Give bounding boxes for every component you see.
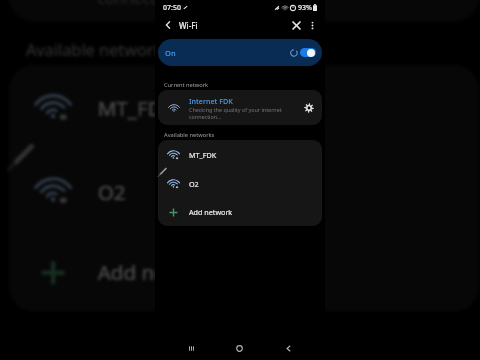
button[interactable]: MT_FDK [9,65,479,148]
button[interactable]: MT_FDK [158,140,322,169]
button[interactable]: On [158,39,322,66]
staticText: Checking the quality of your internet co… [189,106,293,120]
button[interactable]: Home [215,337,264,360]
button[interactable]: Internet FDK [9,0,479,22]
button[interactable]: Network settings [295,90,322,125]
button[interactable]: Back [264,337,313,360]
staticText: Internet FDK [189,96,233,106]
staticText: On [165,48,176,58]
button[interactable]: More options [305,18,320,33]
staticText: MT_FDK [98,93,178,122]
button[interactable]: Add network [158,198,322,226]
staticText: 93% [298,3,312,13]
button[interactable]: Scan QR code [288,17,305,34]
button[interactable]: Navigate up [160,17,176,33]
button[interactable]: Internet FDK [158,90,322,125]
staticText: Add network [98,257,224,286]
button[interactable]: Recent apps [167,337,215,360]
staticText: Add network [189,207,233,217]
staticText: Checking the quality of your internet co… [98,0,396,7]
staticText: 07:50 [163,3,181,13]
staticText: Wi-Fi [179,20,198,31]
staticText: Available networks [26,39,172,62]
button[interactable]: O2 [158,169,322,198]
staticText: O2 [98,177,126,205]
button[interactable]: O2 [9,148,479,231]
button[interactable]: Add network [9,231,479,312]
staticText: MT_FDK [189,150,217,160]
staticText: Current network [164,81,209,89]
staticText: O2 [189,179,199,189]
staticText: Available networks [164,131,215,139]
